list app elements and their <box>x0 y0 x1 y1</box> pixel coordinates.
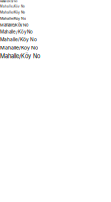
staticText: Mahalle/Köy No <box>0 10 25 14</box>
staticText: Mahalle/Köy No <box>0 53 40 60</box>
staticText: Mahalle/Köy No <box>0 29 33 35</box>
staticText: Mahalle/Köy No <box>0 37 37 42</box>
staticText: Mahalle/Köy No <box>0 5 25 8</box>
staticText: Mahalle/Köy No <box>0 44 38 51</box>
staticText: Mahalle/Köy No <box>0 22 28 27</box>
staticText: Mahalle/Köy No <box>0 0 17 3</box>
staticText: Mahalle/Köy No <box>0 16 26 21</box>
